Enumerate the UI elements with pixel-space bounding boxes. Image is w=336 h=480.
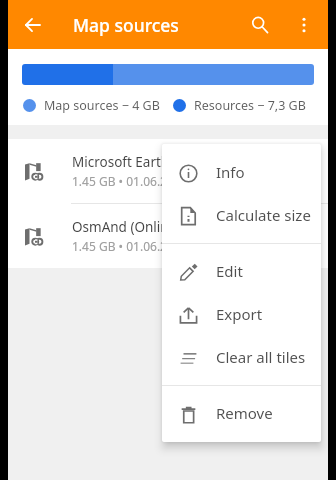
button[interactable]: Search [238,3,282,47]
staticText: Microsoft Earth [72,153,170,171]
staticText: Export [216,304,263,324]
button[interactable]: More options [282,3,326,47]
staticText: Resources − 7,3 GB [194,97,306,114]
staticText: Map sources [73,13,179,37]
button[interactable]: Info [162,151,321,194]
button[interactable]: OsmAnd (Online) [8,204,328,268]
button[interactable]: Microsoft Earth [8,139,328,203]
button[interactable]: Export [162,293,321,336]
button[interactable]: Remove [162,392,321,435]
staticText: Clear all tiles [216,347,306,367]
staticText: Remove [216,403,273,423]
button[interactable]: Edit [162,250,321,293]
staticText: 1.45 GB • 01.06.2023 [72,173,188,189]
button[interactable]: Back [9,1,57,49]
button[interactable]: Calculate size [162,194,321,237]
staticText: Calculate size [216,205,311,225]
staticText: OsmAnd (Online) [72,218,181,236]
staticText: Edit [216,261,243,281]
staticText: Info [216,162,245,182]
staticText: 1.45 GB • 01.06.2023 [72,238,188,254]
button[interactable]: Clear all tiles [162,336,321,379]
staticText: Map sources − 4 GB [44,97,160,114]
